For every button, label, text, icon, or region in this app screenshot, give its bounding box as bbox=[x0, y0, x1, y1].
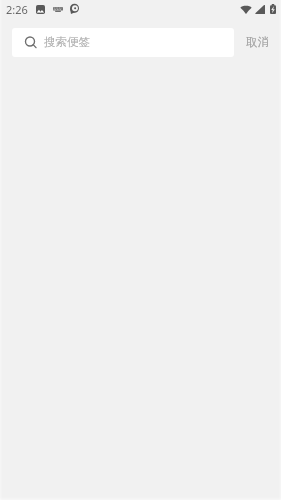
button[interactable]: 搜索便签 bbox=[12, 28, 234, 57]
button[interactable]: 取消 bbox=[234, 24, 281, 61]
staticText: 搜索便签 bbox=[44, 35, 90, 49]
staticText: 取消 bbox=[246, 35, 269, 49]
staticText: 2:26 bbox=[6, 2, 28, 17]
